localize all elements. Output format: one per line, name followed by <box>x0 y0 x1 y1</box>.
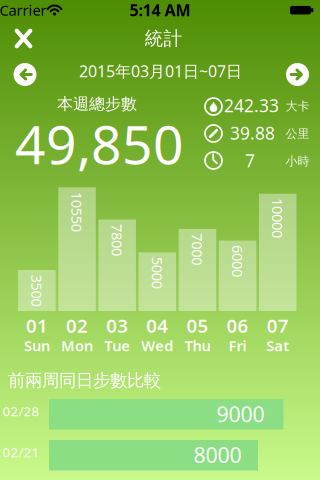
staticText: 06 <box>227 313 249 338</box>
staticText: Tue <box>104 336 130 355</box>
staticText: 07 <box>267 313 289 338</box>
staticText: 03 <box>106 313 128 338</box>
staticText: 5:14 AM <box>129 0 190 21</box>
staticText: 01 <box>26 313 48 338</box>
staticText: 02 <box>66 313 88 338</box>
button[interactable]: Next week <box>286 63 309 86</box>
staticText: 49,850 <box>15 108 184 179</box>
button[interactable]: Previous week <box>13 63 36 86</box>
staticText: 7800 <box>101 230 133 250</box>
staticText: 6000 <box>222 251 254 271</box>
staticText: 5000 <box>141 263 173 283</box>
staticText: 7 <box>245 149 255 172</box>
staticText: 02/28 <box>2 402 39 420</box>
staticText: 7000 <box>181 240 213 259</box>
staticText: 39.88 <box>230 121 275 144</box>
staticText: 10550 <box>57 202 97 221</box>
staticText: 10000 <box>258 208 298 228</box>
staticText: Thu <box>184 336 210 355</box>
staticText: 8000 <box>194 441 242 469</box>
staticText: Fri <box>229 336 247 355</box>
staticText: 本週總步數 <box>57 94 137 114</box>
staticText: 9000 <box>217 400 265 428</box>
staticText: Sat <box>266 336 289 355</box>
staticText: 242.33 <box>224 94 279 117</box>
staticText: 統計 <box>144 27 182 50</box>
staticText: Wed <box>141 336 173 355</box>
staticText: 大卡 <box>285 99 309 114</box>
staticText: Carrier <box>0 0 46 20</box>
staticText: 04 <box>146 313 168 338</box>
staticText: 小時 <box>285 154 309 169</box>
staticText: Sun <box>24 336 50 355</box>
staticText: 05 <box>186 313 208 338</box>
staticText: 3500 <box>21 281 53 300</box>
staticText: 2015年03月01日~07日 <box>79 60 242 82</box>
staticText: 02/21 <box>2 443 39 461</box>
staticText: 前兩周同日步數比較 <box>8 370 161 391</box>
staticText: Mon <box>61 336 93 355</box>
button[interactable]: Close <box>11 25 36 52</box>
staticText: 公里 <box>285 126 309 141</box>
